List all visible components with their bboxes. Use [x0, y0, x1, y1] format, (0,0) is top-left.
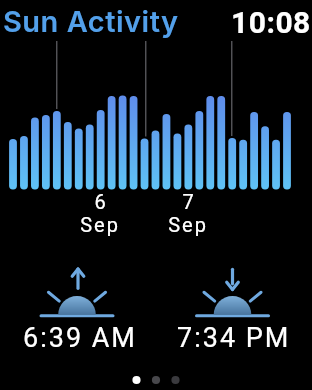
button[interactable]: 7:34 PM [164, 258, 304, 354]
button[interactable]: 6:39 AM [10, 258, 150, 354]
staticText: 6 [94, 190, 106, 213]
staticText: Sun Activity [3, 4, 179, 39]
staticText: 7:34 PM [177, 322, 291, 354]
staticText: 6:39 AM [23, 322, 137, 354]
staticText: Sep [80, 213, 120, 236]
staticText: 7 [182, 190, 194, 213]
staticText: Sep [168, 213, 208, 236]
staticText: 10:08 [231, 5, 311, 40]
